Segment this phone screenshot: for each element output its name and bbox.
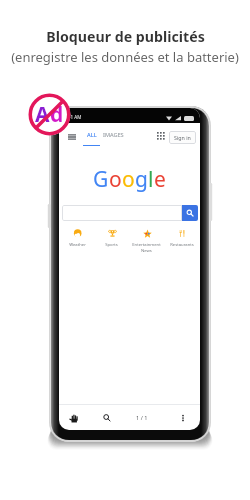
staticText: 9:41 AM xyxy=(64,114,82,120)
staticText: g xyxy=(135,165,148,194)
staticText: l xyxy=(148,165,154,194)
button[interactable]: More options xyxy=(177,412,189,424)
staticText: d xyxy=(50,100,64,129)
button[interactable]: Touch xyxy=(67,412,79,424)
button[interactable]: Restaurants xyxy=(164,228,199,248)
button[interactable]: Google apps xyxy=(156,131,167,142)
button[interactable] xyxy=(62,205,182,221)
button[interactable]: Search xyxy=(101,412,113,424)
button[interactable]: Entertainment News xyxy=(129,228,164,254)
button[interactable]: Search xyxy=(182,205,198,221)
button[interactable]: Sign in xyxy=(169,131,196,144)
button[interactable]: Menu xyxy=(66,131,78,143)
staticText: A xyxy=(35,100,50,129)
staticText: ALL xyxy=(87,131,97,139)
staticText: 1 / 1 xyxy=(136,414,148,422)
staticText: o xyxy=(109,165,122,194)
staticText: G xyxy=(93,165,109,194)
staticText: Restaurants xyxy=(170,242,194,248)
button[interactable]: IMAGES xyxy=(103,131,124,139)
button[interactable]: Weather xyxy=(60,228,94,248)
staticText: Weather xyxy=(69,242,86,248)
staticText: Entertainment News xyxy=(132,242,161,254)
staticText: e xyxy=(154,165,166,194)
staticText: IMAGES xyxy=(103,131,124,139)
staticText: Bloqueur de publicités xyxy=(46,27,205,46)
staticText: (enregistre les données et la batterie) xyxy=(11,48,239,66)
staticText: Sports xyxy=(105,242,118,248)
button[interactable]: Sports xyxy=(94,228,129,248)
staticText: Sign in xyxy=(174,134,191,141)
staticText: o xyxy=(122,165,135,194)
button[interactable]: ALL xyxy=(83,131,100,146)
